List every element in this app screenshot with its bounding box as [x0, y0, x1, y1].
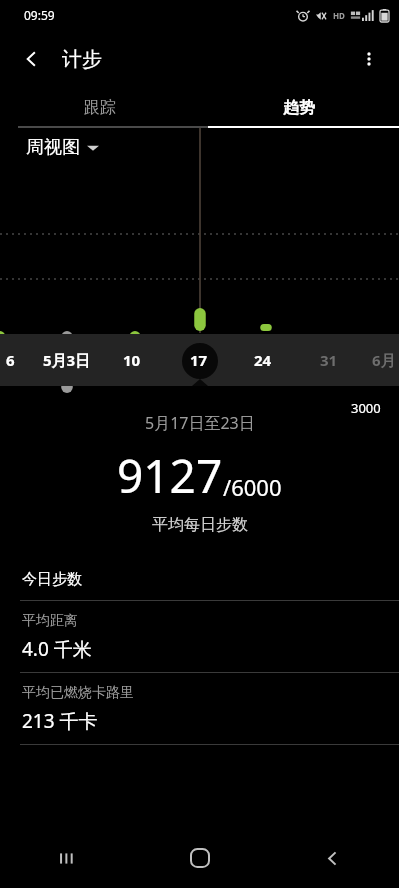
staticText: 3000: [351, 399, 381, 417]
button[interactable]: Recent apps: [0, 828, 133, 888]
staticText: 平均距离: [22, 612, 78, 630]
staticText: 09:59: [24, 7, 55, 23]
staticText: 6: [6, 350, 15, 370]
staticText: /6000: [223, 472, 282, 502]
button[interactable]: Back: [266, 828, 399, 888]
button[interactable]: More options: [347, 37, 391, 81]
button[interactable]: Home: [133, 828, 266, 888]
staticText: 今日步数: [22, 570, 82, 589]
staticText: 10: [123, 350, 141, 370]
staticText: 计步: [62, 47, 102, 72]
button[interactable]: 周视图: [26, 136, 99, 159]
staticText: 5月17日至23日: [145, 412, 255, 434]
staticText: HD: [333, 10, 345, 21]
button[interactable]: 平均距离: [0, 601, 399, 672]
button[interactable]: 今日步数: [0, 558, 399, 600]
staticText: 周视图: [26, 136, 80, 159]
staticText: 6000: [353, 354, 383, 372]
staticText: 31: [320, 350, 338, 370]
staticText: 趋势: [283, 98, 315, 118]
staticText: 6月: [372, 350, 396, 370]
staticText: 24: [254, 350, 272, 370]
staticText: 平均已燃烧卡路里: [22, 684, 134, 702]
staticText: 跟踪: [84, 98, 116, 118]
staticText: 平均每日步数: [152, 515, 248, 535]
button[interactable]: 平均已燃烧卡路里: [0, 673, 399, 744]
staticText: 5月3日: [43, 350, 91, 370]
button[interactable]: 6: [0, 334, 399, 386]
staticText: 213 千卡: [22, 708, 98, 734]
staticText: 4.0 千米: [22, 636, 92, 662]
button[interactable]: Back: [10, 37, 54, 81]
staticText: 17: [190, 350, 208, 370]
button[interactable]: 跟踪: [0, 88, 199, 128]
staticText: 9127: [117, 444, 223, 507]
button[interactable]: 趋势: [199, 88, 399, 128]
